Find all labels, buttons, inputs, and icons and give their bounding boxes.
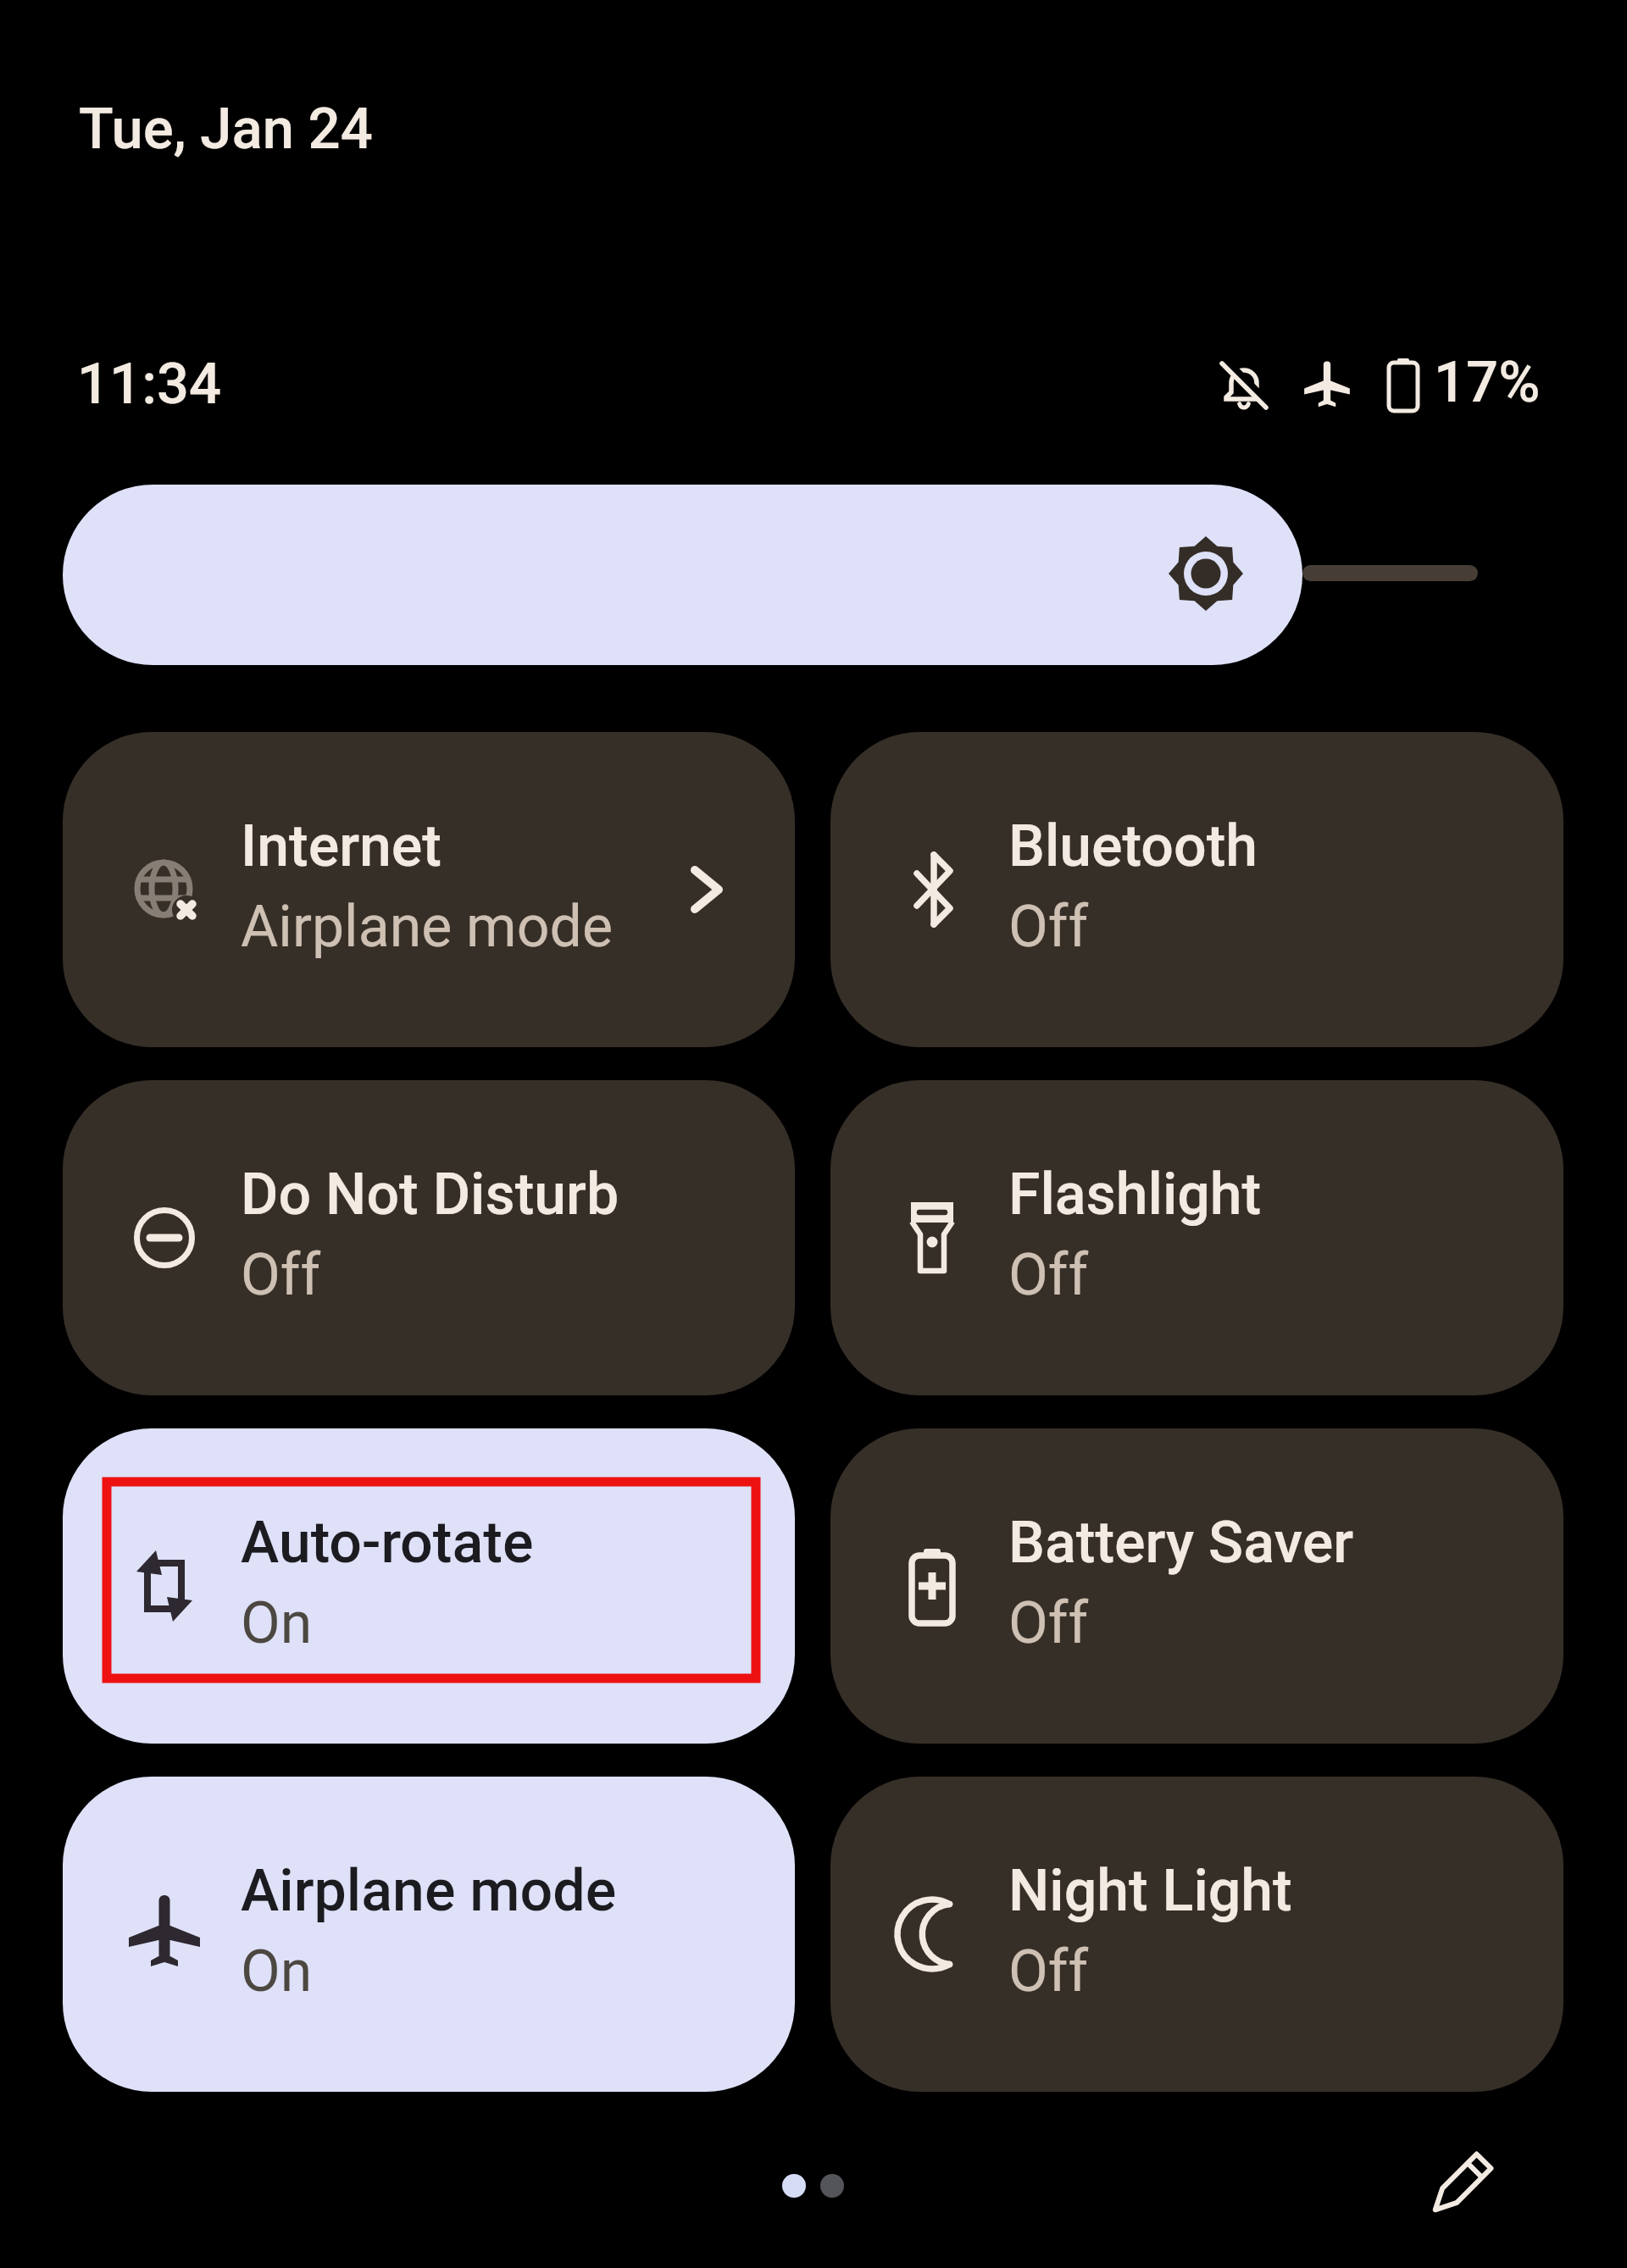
staticText: Tue, Jan 24: [79, 96, 373, 163]
button[interactable]: Bluetooth: [830, 732, 1563, 1047]
staticText: Night Light: [1008, 1857, 1292, 1925]
staticText: Off: [241, 1241, 321, 1309]
staticText: 17%: [1434, 349, 1541, 416]
staticText: On: [241, 1938, 313, 2005]
button[interactable]: Auto-rotate: [63, 1428, 795, 1744]
staticText: Flashlight: [1008, 1161, 1262, 1228]
staticText: Battery Saver: [1008, 1509, 1354, 1577]
staticText: On: [241, 1589, 313, 1657]
button[interactable]: Airplane mode: [63, 1777, 795, 2092]
staticText: Off: [1008, 893, 1089, 961]
button[interactable]: Battery Saver: [830, 1428, 1563, 1744]
staticText: Auto-rotate: [241, 1509, 534, 1577]
button[interactable]: Night Light: [830, 1777, 1563, 2092]
staticText: Do Not Disturb: [241, 1161, 619, 1228]
staticText: Off: [1008, 1938, 1089, 2005]
staticText: Off: [1008, 1241, 1089, 1309]
button[interactable]: [1408, 2135, 1510, 2237]
staticText: Bluetooth: [1008, 812, 1258, 880]
staticText: Airplane mode: [241, 1857, 617, 1925]
button[interactable]: Do Not Disturb: [63, 1080, 795, 1395]
staticText: Off: [1008, 1589, 1089, 1657]
button[interactable]: [63, 485, 1302, 665]
staticText: Airplane mode: [241, 893, 613, 961]
staticText: Internet: [241, 812, 442, 880]
button[interactable]: Flashlight: [830, 1080, 1563, 1395]
staticText: 11:34: [77, 351, 222, 418]
button[interactable]: Internet: [63, 732, 795, 1047]
